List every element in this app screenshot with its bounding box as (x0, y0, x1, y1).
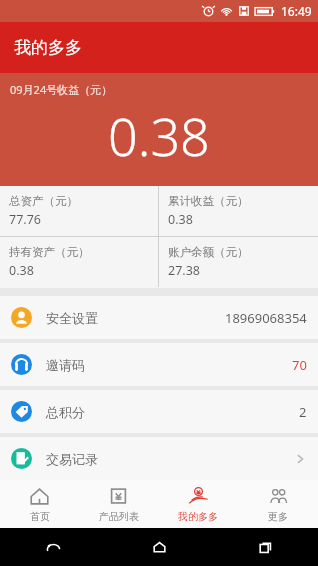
button[interactable]: 交易记录 (0, 437, 318, 480)
staticText: 09月24号收益（元） (10, 82, 113, 97)
staticText: 0.38 (108, 100, 210, 171)
button[interactable]: 更多 (238, 480, 318, 528)
staticText: 16:49 (281, 3, 312, 19)
staticText: 交易记录 (46, 451, 98, 467)
button[interactable]: 产品列表 (79, 480, 158, 528)
staticText: 总资产（元） (9, 194, 78, 208)
staticText: 0.38 (168, 211, 193, 228)
staticText: 18969068354 (225, 309, 307, 327)
button[interactable]: 安全设置 (0, 296, 318, 339)
staticText: 产品列表 (99, 510, 139, 523)
button[interactable]: 邀请码 (0, 343, 318, 386)
staticText: 70 (292, 356, 307, 374)
staticText: 账户余额（元） (168, 245, 249, 259)
staticText: 我的多多 (14, 37, 82, 58)
staticText: 更多 (268, 510, 288, 523)
other: Home (150, 538, 169, 557)
staticText: 邀请码 (46, 357, 85, 373)
staticText: 我的多多 (178, 510, 218, 523)
staticText: 2 (299, 403, 307, 421)
staticText: 总积分 (46, 404, 85, 420)
staticText: 0.38 (9, 262, 34, 279)
other: Recents (256, 538, 275, 557)
other: Back (44, 538, 63, 557)
button[interactable]: 总积分 (0, 390, 318, 433)
staticText: 首页 (30, 510, 50, 523)
staticText: 安全设置 (46, 310, 98, 326)
button[interactable]: 首页 (0, 480, 79, 528)
staticText: 77.76 (9, 211, 41, 228)
staticText: 持有资产（元） (9, 245, 90, 259)
staticText: 累计收益（元） (168, 194, 249, 208)
button[interactable]: 我的多多 (158, 480, 238, 528)
staticText: 27.38 (168, 262, 200, 279)
